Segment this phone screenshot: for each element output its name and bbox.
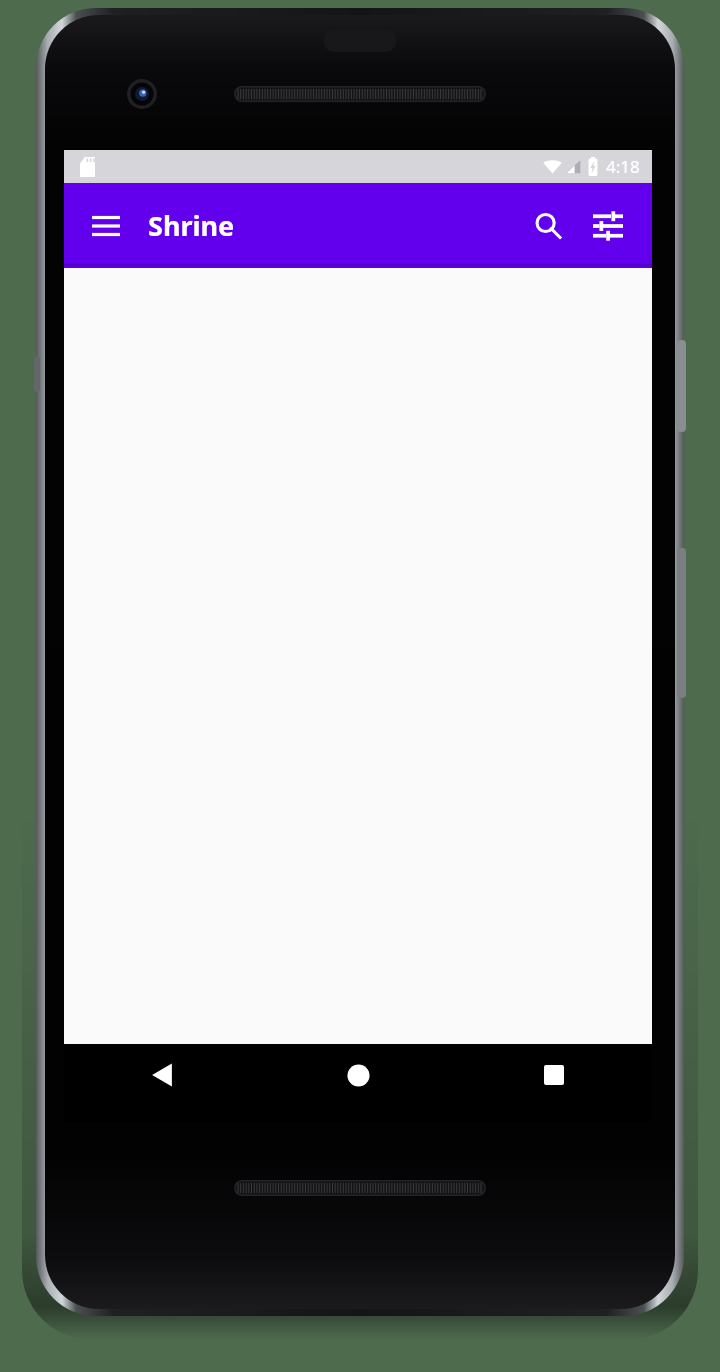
button[interactable]: Back [64, 1044, 260, 1122]
button[interactable]: Search [518, 196, 578, 256]
button[interactable]: Recent apps [456, 1044, 652, 1122]
button[interactable]: Open navigation menu [76, 196, 136, 256]
button[interactable]: Filter options [578, 196, 638, 256]
button[interactable]: Home [260, 1044, 456, 1122]
staticText: Shrine [148, 207, 235, 244]
staticText: 4:18 [606, 155, 640, 178]
